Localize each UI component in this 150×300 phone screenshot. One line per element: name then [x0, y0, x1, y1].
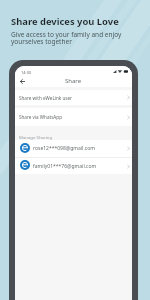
staticText: Share devices you Love [11, 15, 119, 28]
staticText: Share [65, 77, 82, 85]
staticText: family01***76@gmail.com [33, 163, 97, 170]
button[interactable]: Share with eWeLink user [15, 90, 132, 105]
button[interactable]: rose12***098@gmail.com [15, 140, 132, 157]
button[interactable]: Back [17, 76, 28, 87]
staticText: rose12***098@gmail.com [33, 145, 95, 152]
staticText: Share with eWeLink user [19, 95, 72, 101]
button[interactable]: Share via WhatsApp [15, 108, 132, 126]
staticText: Give access to your family and enjoy you… [11, 30, 122, 46]
button[interactable]: family01***76@gmail.com [15, 158, 132, 174]
staticText: 14:00 [21, 70, 32, 75]
staticText: Manage Sharing [19, 134, 53, 140]
staticText: Share via WhatsApp [19, 114, 62, 120]
